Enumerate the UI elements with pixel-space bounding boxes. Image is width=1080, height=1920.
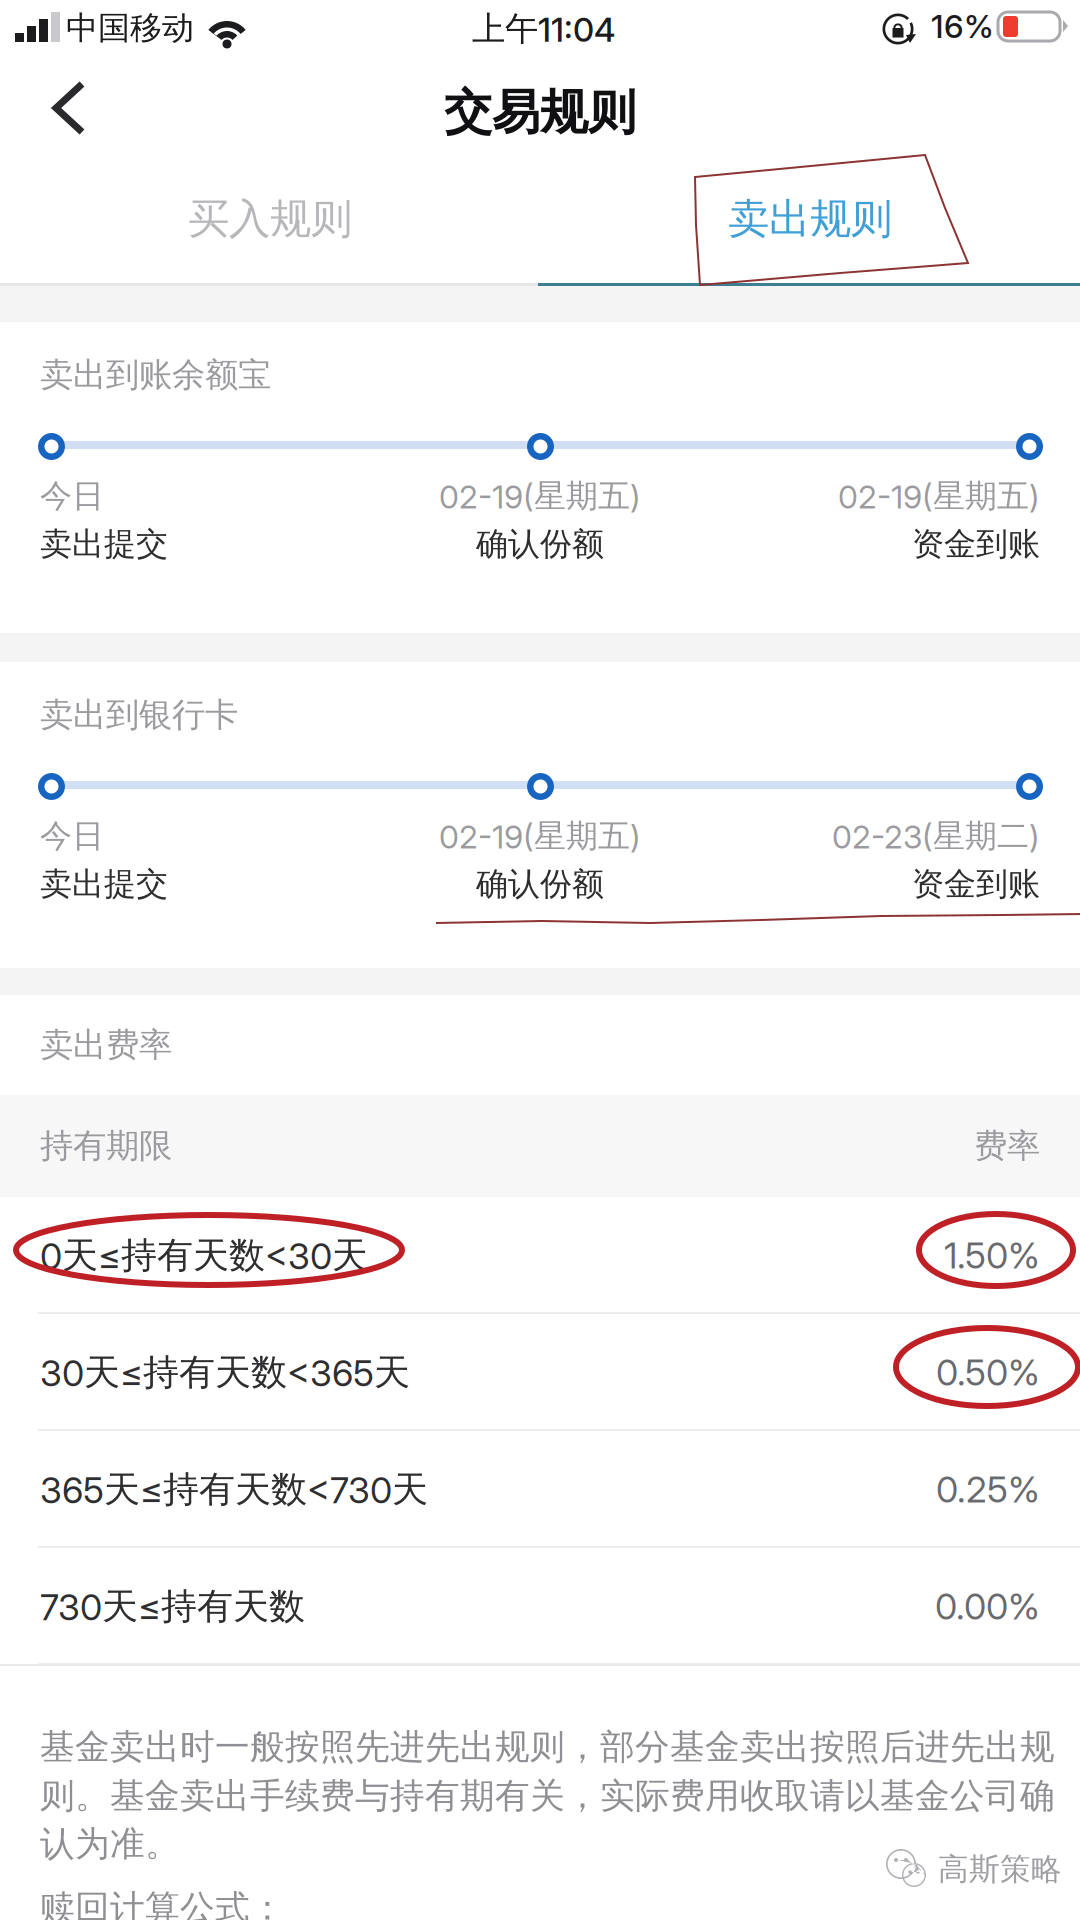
staticText: 则。基金卖出手续费与持有期有关，实际费用收取请以基金公司确 — [40, 1774, 1055, 1818]
staticText: 02-19(星期五) — [838, 476, 1040, 516]
staticText: 上午11:04 — [472, 8, 615, 50]
button[interactable]: 卖出规则 — [540, 155, 1080, 283]
staticText: 0.25% — [936, 1468, 1040, 1511]
staticText: 1.50% — [944, 1234, 1040, 1277]
button[interactable]: 返回 — [0, 58, 140, 155]
staticText: 卖出规则 — [728, 193, 892, 245]
staticText: 730天≤持有天数 — [40, 1584, 305, 1629]
staticText: 365天≤持有天数<730天 — [40, 1467, 428, 1512]
staticText: 资金到账 — [912, 864, 1040, 904]
button[interactable]: 365天≤持有天数<730天 — [0, 1431, 1080, 1548]
staticText: 卖出费率 — [40, 1024, 172, 1066]
staticText: 卖出提交 — [40, 864, 168, 904]
staticText: 资金到账 — [912, 524, 1040, 564]
staticText: 30天≤持有天数<365天 — [40, 1350, 410, 1395]
staticText: 持有期限 — [40, 1125, 172, 1167]
button[interactable]: 730天≤持有天数 — [0, 1548, 1080, 1665]
staticText: 确认份额 — [476, 524, 604, 564]
staticText: 卖出到账余额宝 — [40, 354, 271, 396]
staticText: 02-19(星期五) — [439, 476, 641, 516]
staticText: 卖出提交 — [40, 524, 168, 564]
staticText: 高斯策略 — [938, 1850, 1062, 1889]
staticText: 交易规则 — [444, 82, 636, 143]
staticText: 基金卖出时一般按照先进先出规则，部分基金卖出按照后进先出规 — [40, 1725, 1055, 1769]
button[interactable]: 30天≤持有天数<365天 — [0, 1314, 1080, 1431]
staticText: 今日 — [40, 476, 104, 516]
staticText: 确认份额 — [476, 864, 604, 904]
staticText: 今日 — [40, 816, 104, 856]
button[interactable]: 0天≤持有天数<30天 — [0, 1197, 1080, 1314]
staticText: 0天≤持有天数<30天 — [40, 1233, 368, 1278]
staticText: 02-19(星期五) — [439, 816, 641, 856]
staticText: 0.50% — [936, 1351, 1040, 1394]
staticText: 16% — [931, 7, 994, 46]
staticText: 买入规则 — [188, 193, 352, 245]
staticText: 赎回计算公式： — [40, 1886, 285, 1920]
button[interactable]: 买入规则 — [0, 155, 540, 283]
staticText: 0.00% — [935, 1585, 1040, 1628]
staticText: 02-23(星期二) — [832, 816, 1040, 856]
staticText: 认为准。 — [40, 1822, 180, 1866]
staticText: 卖出到银行卡 — [40, 694, 238, 736]
staticText: 费率 — [974, 1125, 1040, 1167]
staticText: 中国移动 — [66, 8, 194, 48]
